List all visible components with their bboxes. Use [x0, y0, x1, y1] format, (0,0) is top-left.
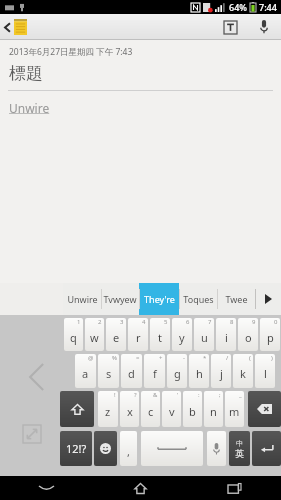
staticText: '	[177, 391, 179, 399]
staticText: z	[105, 404, 111, 419]
staticText: 中	[236, 439, 243, 448]
button[interactable]: @	[75, 354, 96, 388]
staticText: j	[220, 366, 223, 381]
staticText: &	[153, 391, 158, 399]
button[interactable]: =	[121, 354, 142, 388]
button[interactable]: %	[98, 354, 119, 388]
button[interactable]: They're	[139, 283, 179, 315]
button[interactable]: Space	[141, 431, 203, 466]
staticText: =	[136, 354, 140, 362]
button[interactable]: (	[233, 354, 253, 388]
staticText: 0	[274, 318, 278, 326]
button[interactable]: Voice input	[253, 16, 275, 38]
button[interactable]: Toques	[179, 283, 217, 315]
staticText: p	[267, 330, 274, 345]
staticText: k	[240, 366, 246, 381]
button[interactable]: _	[225, 391, 244, 427]
staticText: c	[148, 404, 154, 419]
button[interactable]: Back to notes	[2, 19, 29, 35]
button[interactable]: 9	[238, 318, 258, 351]
button[interactable]: )	[255, 354, 275, 388]
button[interactable]: '	[162, 391, 181, 427]
staticText: e	[113, 330, 120, 345]
staticText: They're	[144, 293, 175, 305]
staticText: 5	[164, 318, 168, 326]
staticText: 2	[98, 318, 102, 326]
staticText: 8	[230, 318, 234, 326]
button[interactable]: 3	[106, 318, 126, 351]
button[interactable]: More suggestions	[255, 283, 281, 315]
staticText: Unwire	[67, 293, 98, 305]
staticText: r	[136, 330, 141, 345]
button[interactable]: Enter	[252, 431, 281, 466]
staticText: ;	[219, 391, 221, 399]
button[interactable]: Unwire	[63, 283, 101, 315]
staticText: /	[226, 354, 229, 362]
button[interactable]: 7	[194, 318, 214, 351]
staticText: 1	[77, 318, 81, 326]
button[interactable]: Shift	[60, 391, 94, 427]
button[interactable]: /	[211, 354, 231, 388]
button[interactable]: Tvwyew	[101, 283, 139, 315]
button[interactable]: 1	[64, 318, 83, 351]
staticText: y	[179, 330, 185, 345]
button[interactable]: Voice typing	[207, 431, 226, 466]
staticText: 英	[235, 448, 244, 459]
staticText: h	[196, 366, 203, 381]
staticText: l	[264, 366, 267, 381]
button[interactable]: &	[141, 391, 160, 427]
staticText: v	[169, 404, 175, 419]
button[interactable]: *	[189, 354, 209, 388]
button[interactable]: 8	[216, 318, 236, 351]
staticText: Twee	[225, 293, 248, 305]
button[interactable]: 5	[150, 318, 170, 351]
button[interactable]: +	[144, 354, 165, 388]
staticText: u	[201, 330, 208, 345]
button[interactable]: Emoji	[94, 431, 117, 466]
staticText: !	[114, 391, 116, 399]
staticText: *	[203, 354, 207, 362]
staticText: s	[106, 366, 112, 381]
staticText: 7	[208, 318, 212, 326]
button[interactable]: 2	[85, 318, 104, 351]
staticText: i	[225, 330, 228, 345]
staticText: n	[210, 404, 217, 419]
staticText: t	[158, 330, 162, 345]
button[interactable]: -	[167, 354, 187, 388]
button[interactable]: ,	[120, 431, 137, 466]
button[interactable]: Hide keyboard	[0, 476, 93, 500]
button[interactable]: Twee	[217, 283, 255, 315]
staticText: d	[128, 366, 135, 381]
staticText: ?	[134, 391, 137, 399]
staticText: ,	[127, 444, 130, 459]
button[interactable]: Home	[93, 476, 187, 500]
button[interactable]: 6	[172, 318, 192, 351]
button[interactable]: !	[98, 391, 118, 427]
staticText: 6	[186, 318, 190, 326]
button[interactable]: Text formatting	[219, 16, 241, 38]
staticText: -	[183, 354, 185, 362]
staticText: a	[82, 366, 89, 381]
button[interactable]: :	[183, 391, 202, 427]
button[interactable]: Recent apps	[187, 476, 281, 500]
staticText: q	[70, 330, 77, 345]
button[interactable]: ;	[204, 391, 223, 427]
staticText: :	[198, 391, 200, 399]
button[interactable]: Resize keyboard	[23, 425, 41, 443]
button[interactable]: ?	[120, 391, 139, 427]
staticText: 2013年6月27日星期四 下午 7:43	[9, 46, 133, 58]
staticText: g	[174, 366, 181, 381]
staticText: 64%	[229, 1, 247, 13]
staticText: +	[159, 354, 163, 362]
staticText: @	[88, 354, 94, 362]
staticText: w	[90, 330, 99, 345]
staticText: )	[271, 354, 273, 362]
staticText: o	[245, 330, 252, 345]
button[interactable]: Backspace	[248, 391, 281, 427]
staticText: 12!?	[66, 441, 87, 456]
button[interactable]: 4	[128, 318, 148, 351]
button[interactable]: 0	[260, 318, 280, 351]
staticText: 3	[120, 318, 124, 326]
button[interactable]: Switch language	[229, 431, 250, 466]
button[interactable]: Numbers and symbols	[60, 431, 92, 466]
